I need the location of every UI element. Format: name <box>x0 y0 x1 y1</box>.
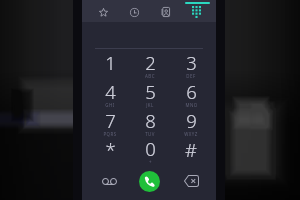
button[interactable]: 9 <box>171 108 211 134</box>
button[interactable]: 7 <box>90 108 130 134</box>
staticText: 0 <box>145 136 156 161</box>
button[interactable]: Recents <box>119 0 150 22</box>
button[interactable]: 1 <box>90 50 130 76</box>
button[interactable]: 8 <box>130 108 170 134</box>
staticText: 9 <box>186 108 197 133</box>
staticText: GHI <box>105 102 115 108</box>
staticText: WXYZ <box>184 131 198 137</box>
staticText: + <box>149 159 152 165</box>
staticText: JKL <box>146 102 154 108</box>
staticText: 6 <box>186 79 197 104</box>
button[interactable]: 5 <box>130 79 170 105</box>
staticText: 5 <box>145 79 156 104</box>
button[interactable]: Backspace <box>182 172 200 190</box>
button[interactable]: Contacts <box>150 0 181 22</box>
staticText: PQRS <box>103 131 117 137</box>
button[interactable]: 4 <box>90 79 130 105</box>
staticText: 4 <box>105 79 116 104</box>
staticText: 8 <box>145 108 156 133</box>
button[interactable]: 0 <box>130 136 170 162</box>
button[interactable]: * <box>90 136 130 162</box>
button[interactable]: 3 <box>171 50 211 76</box>
button[interactable]: Call <box>139 171 160 192</box>
button[interactable]: Keypad <box>181 0 212 22</box>
button[interactable]: 6 <box>171 79 211 105</box>
staticText: TUV <box>145 131 155 137</box>
staticText: 1 <box>105 50 116 75</box>
staticText: 3 <box>186 50 197 75</box>
staticText: DEF <box>186 73 196 79</box>
button[interactable]: # <box>171 136 211 162</box>
button[interactable]: Voicemail <box>100 172 118 190</box>
staticText: ABC <box>145 73 155 79</box>
button[interactable]: Favorites <box>87 0 119 22</box>
staticText: 2 <box>145 50 156 75</box>
button[interactable]: 2 <box>130 50 170 76</box>
staticText: MNO <box>185 102 198 108</box>
staticText: * <box>105 137 116 162</box>
staticText: 7 <box>105 108 116 133</box>
staticText: # <box>185 137 197 162</box>
